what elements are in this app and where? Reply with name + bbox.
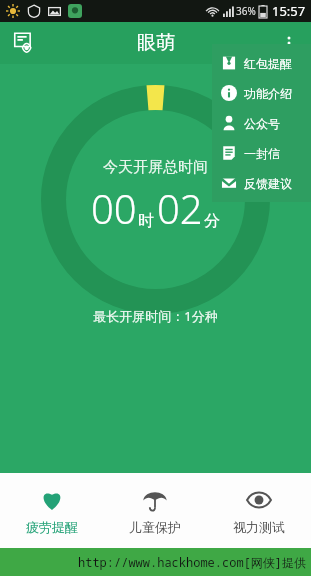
staticText: 视力测试 — [233, 519, 285, 535]
staticText: 时 — [138, 211, 154, 231]
button[interactable]: Navigate up — [8, 27, 40, 59]
button[interactable]: 疲劳提醒 — [0, 473, 103, 548]
staticText: 15:57 — [272, 2, 306, 20]
staticText: 功能介绍 — [244, 86, 292, 101]
staticText: 02 — [157, 181, 203, 235]
staticText: 反馈建议 — [244, 176, 292, 191]
button[interactable]: 功能介绍 — [212, 78, 311, 108]
staticText: 儿童保护 — [129, 519, 181, 535]
staticText: 今天开屏总时间 — [103, 158, 208, 177]
staticText: 眼萌 — [137, 31, 175, 55]
staticText: 36% — [236, 4, 256, 18]
button[interactable]: 红包提醒 — [212, 48, 311, 78]
staticText: 一封信 — [244, 146, 280, 161]
staticText: 分 — [204, 211, 220, 231]
staticText: 疲劳提醒 — [26, 519, 78, 535]
button[interactable]: More options — [273, 27, 305, 59]
staticText: 00 — [91, 181, 137, 235]
button[interactable]: 反馈建议 — [212, 168, 311, 198]
staticText: 公众号 — [244, 116, 280, 131]
button[interactable]: 儿童保护 — [103, 473, 207, 548]
staticText: 红包提醒 — [244, 56, 292, 71]
button[interactable]: 公众号 — [212, 108, 311, 138]
staticText: http://www.hackhome.com[网侠]提供 — [78, 554, 307, 570]
button[interactable]: 一封信 — [212, 138, 311, 168]
button[interactable]: 视力测试 — [207, 473, 311, 548]
staticText: 最长开屏时间：1分种 — [93, 307, 218, 325]
